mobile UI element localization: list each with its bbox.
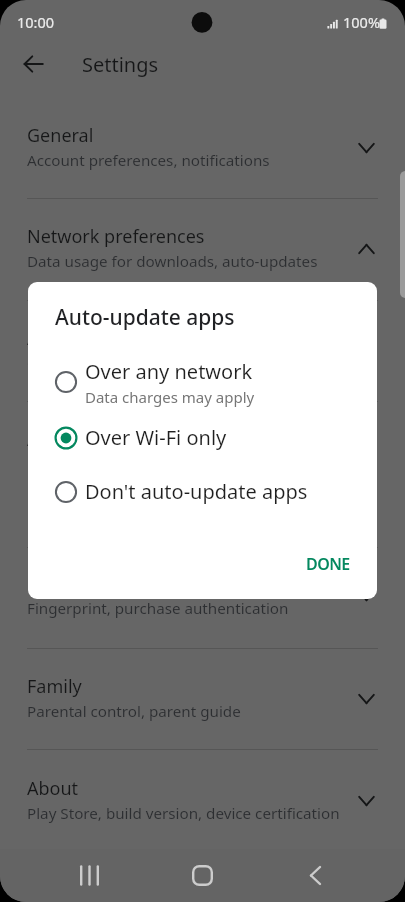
staticText: Parental control, parent guide	[27, 701, 241, 722]
staticText: Account settings	[27, 427, 168, 452]
staticText: About	[27, 776, 79, 801]
staticText: Auto-update apps	[27, 326, 179, 351]
staticText: General	[27, 123, 94, 148]
button[interactable]: Don't auto-update apps	[28, 469, 377, 515]
button[interactable]: Account settings	[0, 401, 405, 502]
staticText: Network preferences	[27, 224, 205, 249]
staticText: Settings	[82, 51, 159, 78]
staticText: Over Wi-Fi only	[27, 353, 135, 374]
staticText: DONE	[306, 553, 350, 575]
button[interactable]: Network preferences	[0, 198, 405, 299]
button[interactable]: Over Wi-Fi only	[28, 415, 377, 461]
staticText: Family	[27, 674, 82, 699]
button[interactable]: DONE	[290, 548, 362, 592]
button[interactable]: About	[0, 750, 405, 851]
button[interactable]: Over any network	[28, 353, 377, 411]
button[interactable]: Family	[0, 648, 405, 749]
button[interactable]: Back	[9, 40, 57, 88]
staticText: Payment methods, notifications	[27, 454, 254, 475]
button[interactable]: Home	[177, 855, 227, 895]
staticText: Play Store, build version, device certif…	[27, 803, 340, 824]
staticText: Don't auto-update apps	[85, 478, 308, 505]
button[interactable]: Auto-update apps	[0, 300, 405, 401]
staticText: Auto-update apps	[55, 303, 235, 332]
button[interactable]: Purchases	[0, 545, 405, 646]
staticText: Purchases	[27, 571, 114, 596]
staticText: Data charges may apply	[85, 387, 255, 407]
staticText: Data usage for downloads, auto-updates	[27, 251, 318, 272]
button[interactable]: General	[0, 97, 405, 198]
button[interactable]: Back	[290, 855, 340, 895]
button[interactable]: Recent apps	[64, 855, 114, 895]
staticText: Fingerprint, purchase authentication	[27, 598, 289, 619]
staticText: Account preferences, notifications	[27, 150, 270, 171]
staticText: Over any network	[85, 358, 253, 385]
staticText: 100%	[343, 12, 380, 32]
staticText: Over Wi-Fi only	[85, 424, 227, 451]
staticText: 10:00	[17, 12, 55, 32]
